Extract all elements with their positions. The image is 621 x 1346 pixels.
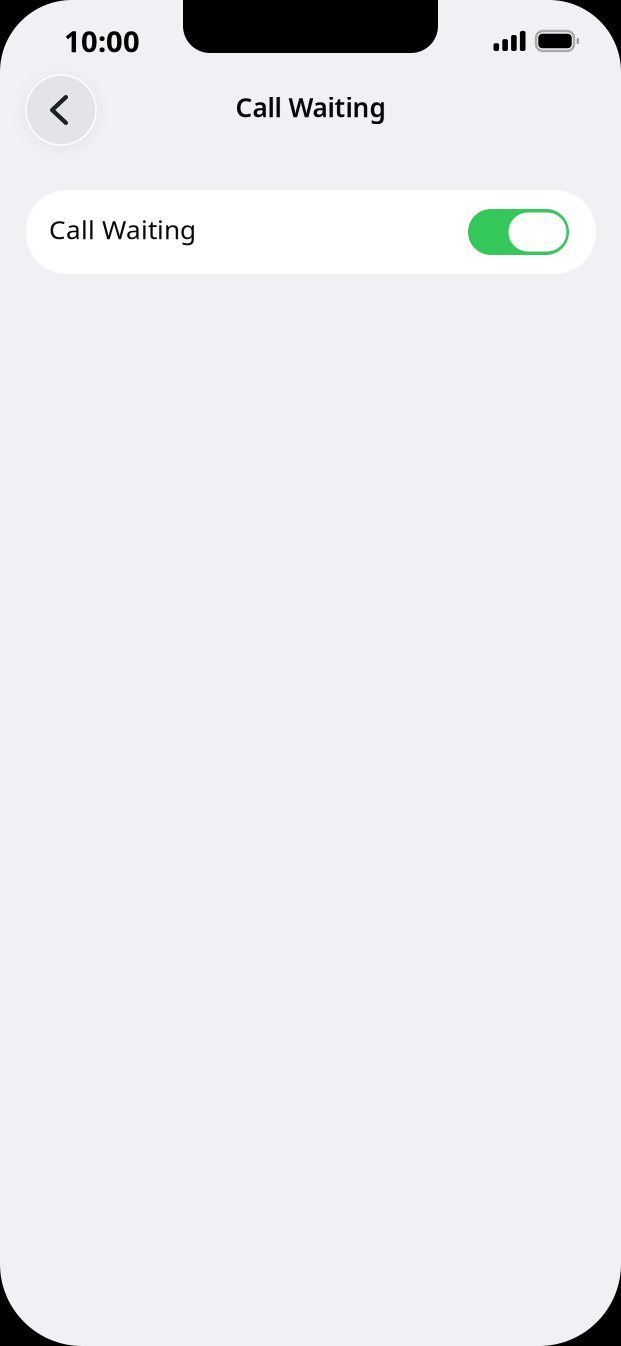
button[interactable]: Call Waiting: [26, 190, 596, 274]
staticText: Call Waiting: [235, 90, 385, 124]
staticText: 10:00: [64, 22, 140, 60]
staticText: Call Waiting: [49, 212, 196, 246]
button[interactable]: Back: [26, 75, 96, 145]
